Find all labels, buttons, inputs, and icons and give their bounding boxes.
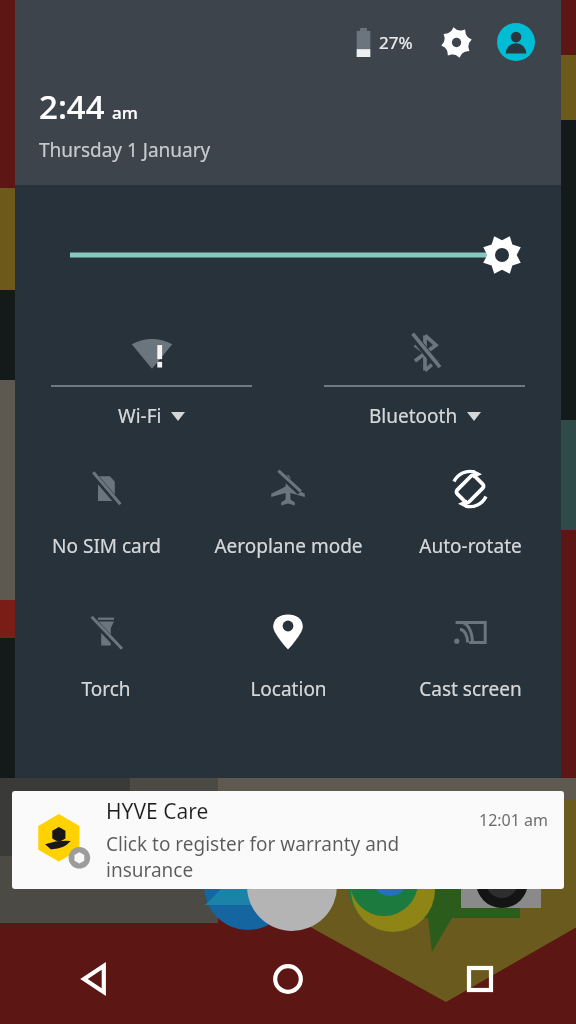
button[interactable]: Brightness <box>15 185 561 307</box>
button[interactable]: Aeroplane mode <box>197 447 379 590</box>
staticText: 2:44 <box>39 84 105 129</box>
staticText: Torch <box>81 676 131 702</box>
staticText: 12:01 am <box>479 809 548 831</box>
staticText: Bluetooth <box>369 403 458 429</box>
staticText: am <box>112 101 138 124</box>
button[interactable]: Torch <box>15 590 197 733</box>
staticText: Auto-rotate <box>419 533 522 559</box>
staticText: 27% <box>379 31 413 54</box>
staticText: Cast screen <box>419 676 522 702</box>
staticText: Wi-Fi <box>118 403 162 429</box>
staticText: No SIM card <box>52 533 161 559</box>
button[interactable]: Location <box>197 590 379 733</box>
button[interactable]: Settings <box>433 19 479 65</box>
staticText: Location <box>250 676 327 702</box>
button[interactable]: Home <box>192 934 384 1024</box>
staticText: HYVE Care <box>106 797 209 826</box>
button[interactable]: Cast screen <box>379 590 561 733</box>
button[interactable]: HYVE Care <box>12 791 564 889</box>
button[interactable]: Back <box>0 934 192 1024</box>
button[interactable]: No SIM card <box>15 447 197 590</box>
staticText: Click to register for warranty and insur… <box>106 831 479 883</box>
button[interactable]: Bluetooth <box>288 307 561 429</box>
staticText: Aeroplane mode <box>214 533 363 559</box>
button[interactable]: User account <box>493 19 539 65</box>
staticText: Thursday 1 January <box>39 137 211 163</box>
button[interactable]: Auto-rotate <box>379 447 561 590</box>
button[interactable]: Recent apps <box>384 934 576 1024</box>
button[interactable]: Wi-Fi <box>15 307 288 429</box>
